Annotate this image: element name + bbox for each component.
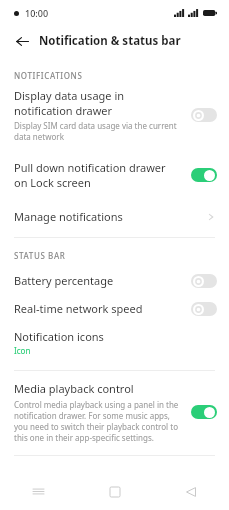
staticText: Real-time network speed: [14, 301, 143, 316]
staticText: Control media playback using a panel in …: [14, 399, 181, 443]
staticText: Manage notifications: [14, 209, 207, 224]
button[interactable]: Manage notifications: [0, 200, 229, 235]
button[interactable]: Home: [77, 473, 153, 510]
button[interactable]: Back: [153, 473, 229, 510]
staticText: Pull down notification drawer on Lock sc…: [14, 160, 181, 190]
staticText: Icon: [14, 345, 31, 356]
staticText: Display SIM card data usage via the curr…: [14, 120, 181, 142]
staticText: NOTIFICATIONS: [14, 70, 83, 81]
button[interactable]: Media playback control: [0, 381, 229, 443]
button[interactable]: Pull down notification drawer on Lock sc…: [0, 154, 229, 196]
button[interactable]: Display data usage in notification drawe…: [0, 88, 229, 150]
staticText: Notification & status bar: [39, 33, 181, 49]
staticText: Battery percentage: [14, 273, 114, 288]
button[interactable]: Real-time network speed: [0, 297, 229, 320]
staticText: 10:00: [25, 7, 49, 19]
button[interactable]: Notification icons: [0, 325, 229, 362]
button[interactable]: Battery percentage: [0, 269, 229, 292]
staticText: Display data usage in notification drawe…: [14, 88, 181, 118]
staticText: STATUS BAR: [14, 250, 66, 261]
staticText: Media playback control: [14, 381, 134, 396]
button[interactable]: Back: [11, 30, 33, 52]
staticText: Notification icons: [14, 329, 104, 344]
button[interactable]: Recent apps: [0, 473, 77, 510]
